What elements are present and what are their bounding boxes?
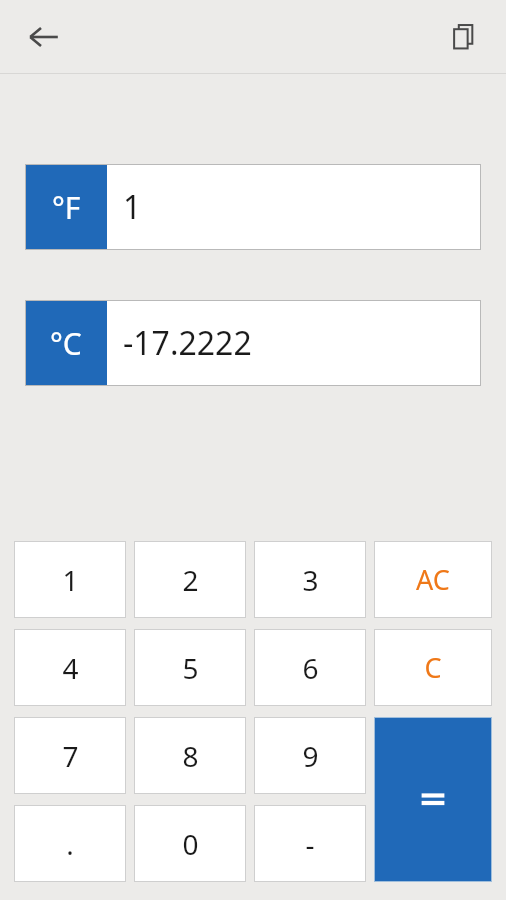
staticText: AC [416, 561, 450, 598]
staticText: 5 [182, 649, 199, 687]
staticText: °C [50, 323, 82, 364]
staticText: 1 [62, 561, 79, 599]
staticText: 2 [182, 561, 199, 599]
button[interactable]: Copy [440, 13, 488, 61]
button[interactable]: Equals [374, 717, 492, 882]
button[interactable]: AC [374, 541, 492, 618]
staticText: 9 [302, 737, 319, 775]
button[interactable]: 3 [254, 541, 366, 618]
staticText: -17.2222 [123, 321, 252, 365]
staticText: C [424, 649, 442, 686]
staticText: °F [52, 187, 81, 228]
button[interactable]: Back [18, 11, 70, 63]
button[interactable]: 6 [254, 629, 366, 706]
button[interactable]: 0 [134, 805, 246, 882]
button[interactable]: 1 [14, 541, 126, 618]
button[interactable]: - [254, 805, 366, 882]
button[interactable]: 7 [14, 717, 126, 794]
staticText: 1 [123, 185, 142, 229]
staticText: 8 [182, 737, 199, 775]
button[interactable]: °F [25, 164, 481, 250]
button[interactable]: 2 [134, 541, 246, 618]
button[interactable]: C [374, 629, 492, 706]
staticText: 6 [302, 649, 319, 687]
button[interactable]: 4 [14, 629, 126, 706]
staticText: . [66, 825, 74, 863]
button[interactable]: °C [25, 300, 481, 386]
staticText: 7 [62, 737, 79, 775]
button[interactable]: 5 [134, 629, 246, 706]
button[interactable]: 9 [254, 717, 366, 794]
button[interactable]: . [14, 805, 126, 882]
staticText: 0 [182, 825, 199, 863]
staticText: - [305, 825, 315, 863]
staticText: 4 [62, 649, 79, 687]
staticText: 3 [302, 561, 319, 599]
button[interactable]: 8 [134, 717, 246, 794]
